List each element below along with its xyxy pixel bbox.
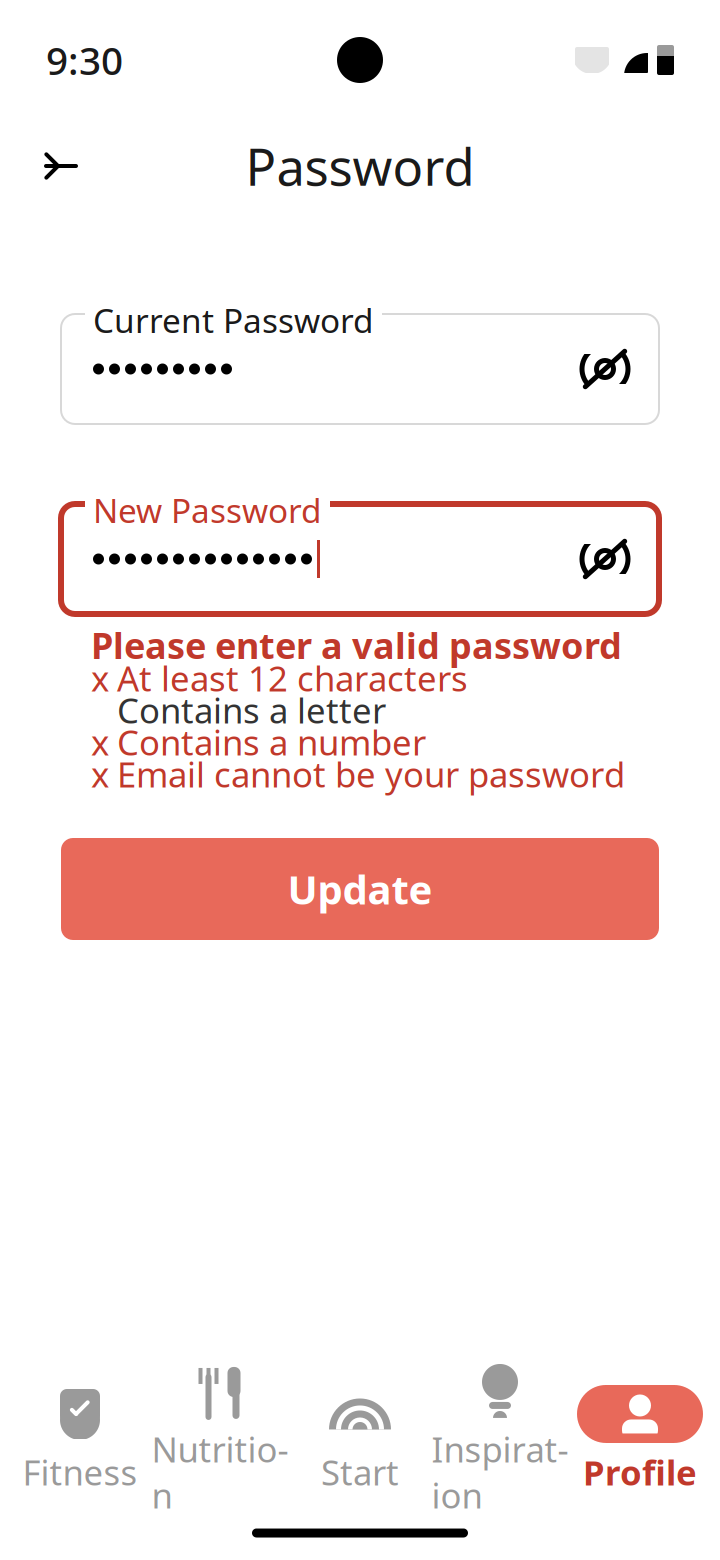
staticText: Start xyxy=(321,1449,399,1495)
staticText: x xyxy=(91,751,109,797)
button[interactable]: Back xyxy=(24,129,98,203)
staticText: Current Password xyxy=(93,298,374,342)
staticText: x xyxy=(91,719,109,765)
staticText: Fitness xyxy=(22,1449,137,1495)
staticText: New Password xyxy=(93,488,322,532)
staticText: Password xyxy=(245,132,474,200)
staticText: Contains a letter xyxy=(117,687,386,733)
staticText: Profile xyxy=(583,1449,697,1495)
staticText xyxy=(91,687,100,733)
staticText: Email cannot be your password xyxy=(117,751,625,797)
button[interactable]: Profile xyxy=(570,1381,710,1499)
staticText: Please enter a valid password xyxy=(91,621,622,669)
button[interactable]: Start xyxy=(290,1381,430,1499)
button[interactable]: Hide password xyxy=(567,331,643,407)
staticText: Update xyxy=(287,862,432,915)
staticText: At least 12 characters xyxy=(117,655,468,701)
button[interactable]: Hide password xyxy=(567,521,643,597)
staticText: Contains a number xyxy=(117,719,426,765)
button[interactable]: Update xyxy=(61,838,659,940)
staticText: x xyxy=(91,655,109,701)
staticText: Nutrition xyxy=(151,1426,288,1518)
staticText: Inspiration xyxy=(431,1426,568,1518)
button[interactable]: Inspiration xyxy=(430,1358,570,1522)
button[interactable]: Fitness xyxy=(10,1381,150,1499)
button[interactable]: Nutrition xyxy=(150,1358,290,1522)
staticText: 9:30 xyxy=(46,34,123,86)
